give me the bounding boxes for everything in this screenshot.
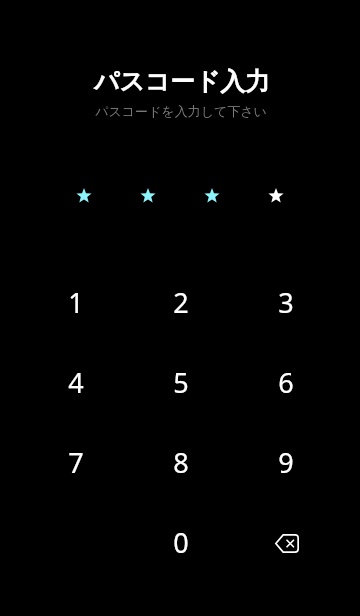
staticText: 6 — [278, 364, 294, 401]
button[interactable]: 4 — [23, 342, 128, 422]
staticText: 8 — [173, 444, 189, 481]
staticText: 1 — [68, 284, 84, 321]
button[interactable]: 3 — [233, 262, 338, 342]
button[interactable]: 9 — [233, 422, 338, 502]
staticText: 3 — [278, 284, 294, 321]
staticText: パスコードを入力して下さい — [95, 103, 267, 119]
staticText: 0 — [173, 524, 189, 561]
button[interactable]: 0 — [128, 502, 233, 582]
staticText: 4 — [68, 364, 84, 401]
button[interactable]: 5 — [128, 342, 233, 422]
staticText: 2 — [173, 284, 189, 321]
button[interactable]: Backspace — [233, 502, 338, 582]
staticText: 7 — [68, 444, 84, 481]
staticText: 5 — [173, 364, 189, 401]
button[interactable]: 2 — [128, 262, 233, 342]
button[interactable]: 1 — [23, 262, 128, 342]
button[interactable]: 7 — [23, 422, 128, 502]
staticText: パスコード入力 — [94, 66, 270, 97]
button[interactable]: 6 — [233, 342, 338, 422]
button[interactable]: 8 — [128, 422, 233, 502]
staticText: 9 — [278, 444, 294, 481]
